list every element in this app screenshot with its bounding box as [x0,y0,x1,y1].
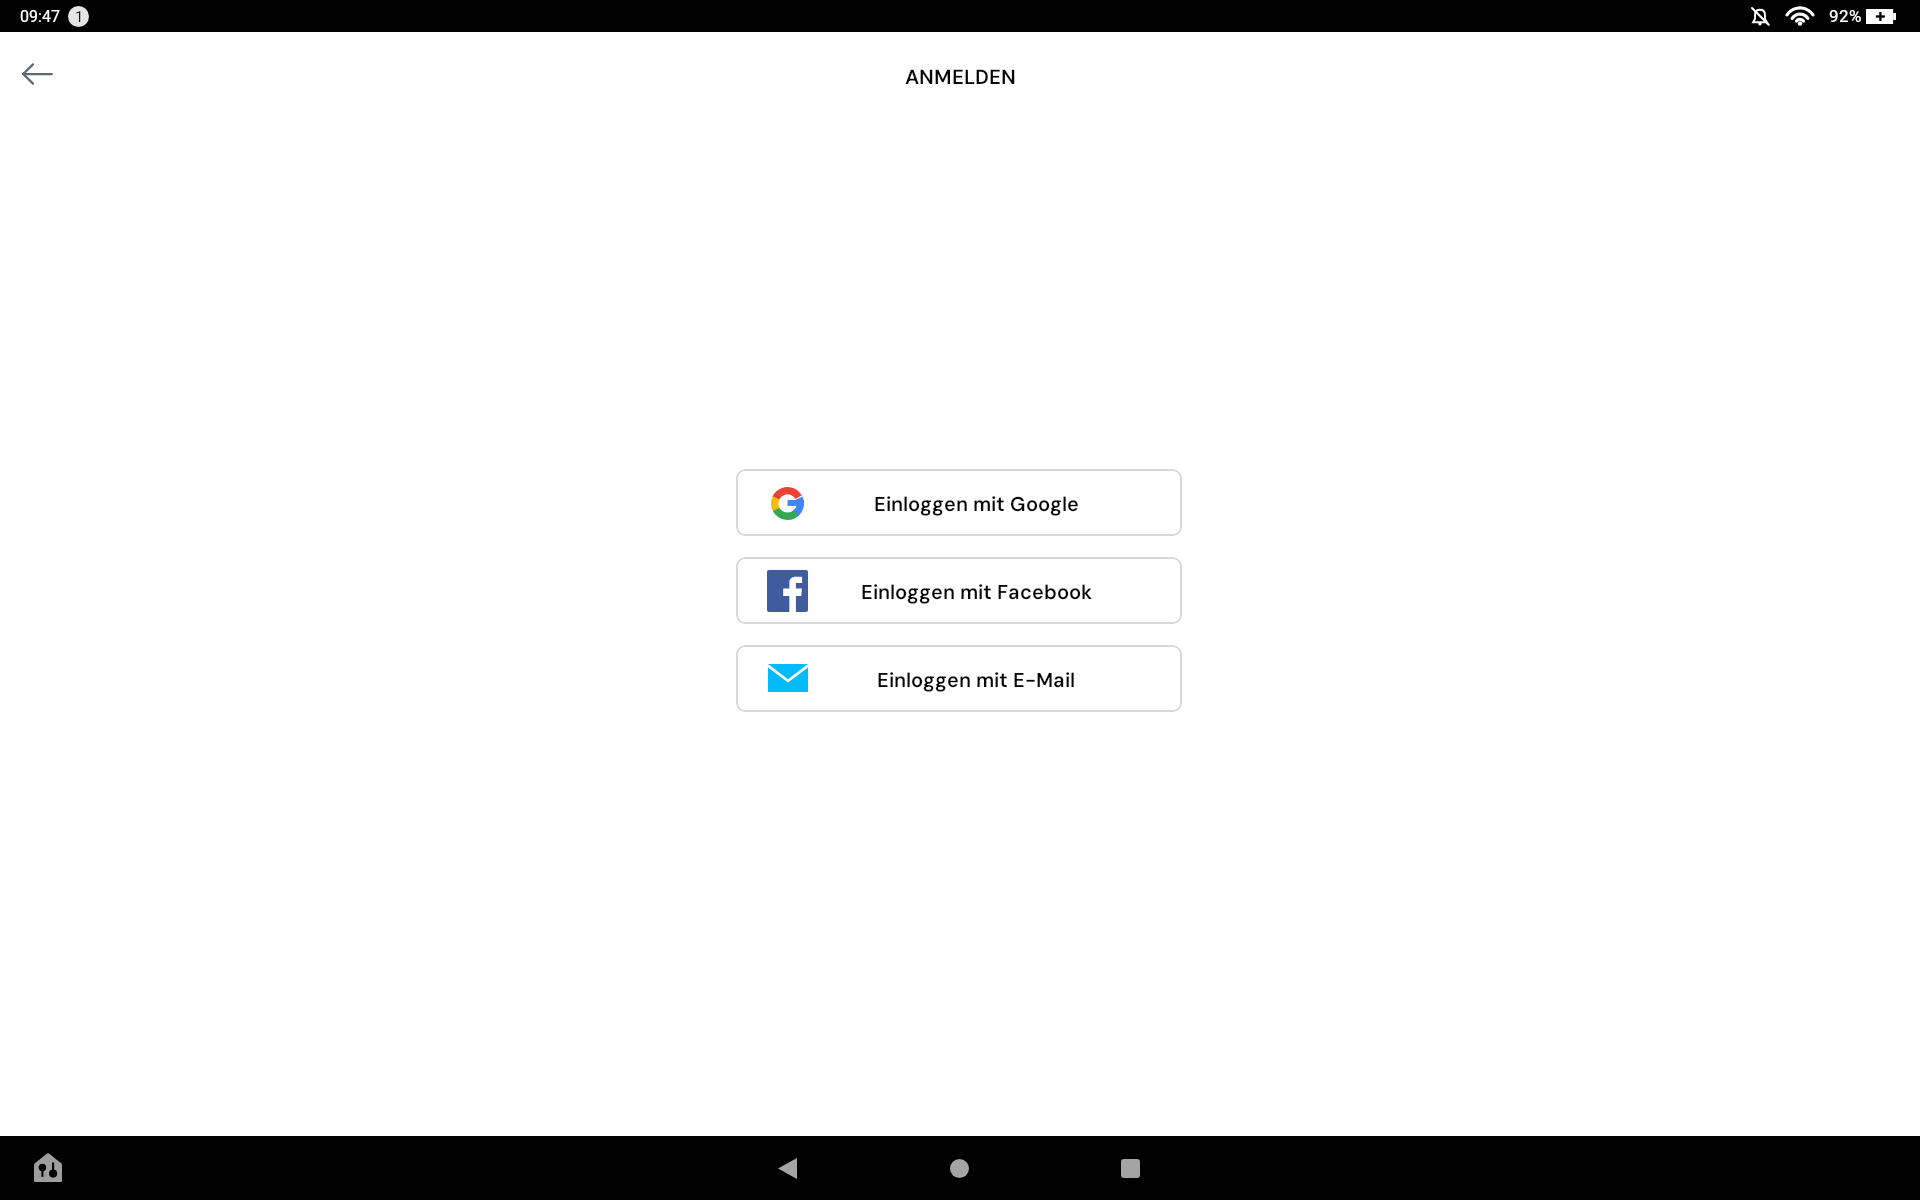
button[interactable]: Einloggen mit E-Mail [736,645,1182,712]
other: Einloggen mit Facebook [860,579,1093,605]
button[interactable]: Back [15,52,59,96]
button[interactable]: App shortcut [26,1146,70,1190]
button[interactable]: Back [763,1144,811,1192]
other: 09:47 [19,7,61,25]
button[interactable]: Einloggen mit Facebook [736,557,1182,624]
other: Einloggen mit Google [873,491,1080,517]
button[interactable]: Home [935,1144,983,1192]
button[interactable]: Recent apps [1106,1144,1154,1192]
other: 1 [74,9,84,25]
other: Einloggen mit E-Mail [876,667,1076,693]
other: ANMELDEN [904,64,1017,90]
other: 92% [1828,6,1862,25]
button[interactable]: Einloggen mit Google [736,469,1182,536]
